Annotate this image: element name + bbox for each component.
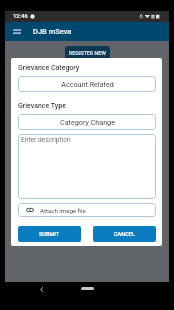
staticText: Account Related bbox=[61, 80, 114, 88]
staticText: Category Change bbox=[60, 118, 115, 126]
button[interactable]: Attach image file bbox=[18, 203, 156, 217]
staticText: Grievance Category bbox=[18, 64, 80, 72]
staticText: Grievance Type bbox=[18, 102, 66, 110]
button[interactable]: REGISTER NEW bbox=[65, 46, 110, 60]
button[interactable]: CANCEL bbox=[93, 226, 156, 242]
staticText: Enter description bbox=[21, 136, 71, 144]
button[interactable]: Back bbox=[29, 282, 53, 296]
button[interactable]: Home bbox=[81, 287, 94, 290]
staticText: 12:46 bbox=[13, 13, 28, 20]
staticText: REGISTER NEW bbox=[69, 50, 106, 56]
button[interactable]: Account Related bbox=[18, 76, 156, 92]
staticText: Attach image file bbox=[40, 207, 86, 214]
button[interactable]: Open navigation menu bbox=[5, 22, 28, 41]
button[interactable]: Enter description bbox=[18, 134, 156, 199]
staticText: CANCEL bbox=[114, 231, 135, 237]
button[interactable]: Category Change bbox=[18, 114, 156, 130]
staticText: DJB mSeva bbox=[33, 27, 72, 36]
staticText: SUBMIT bbox=[39, 231, 60, 237]
button[interactable]: SUBMIT bbox=[18, 226, 81, 242]
